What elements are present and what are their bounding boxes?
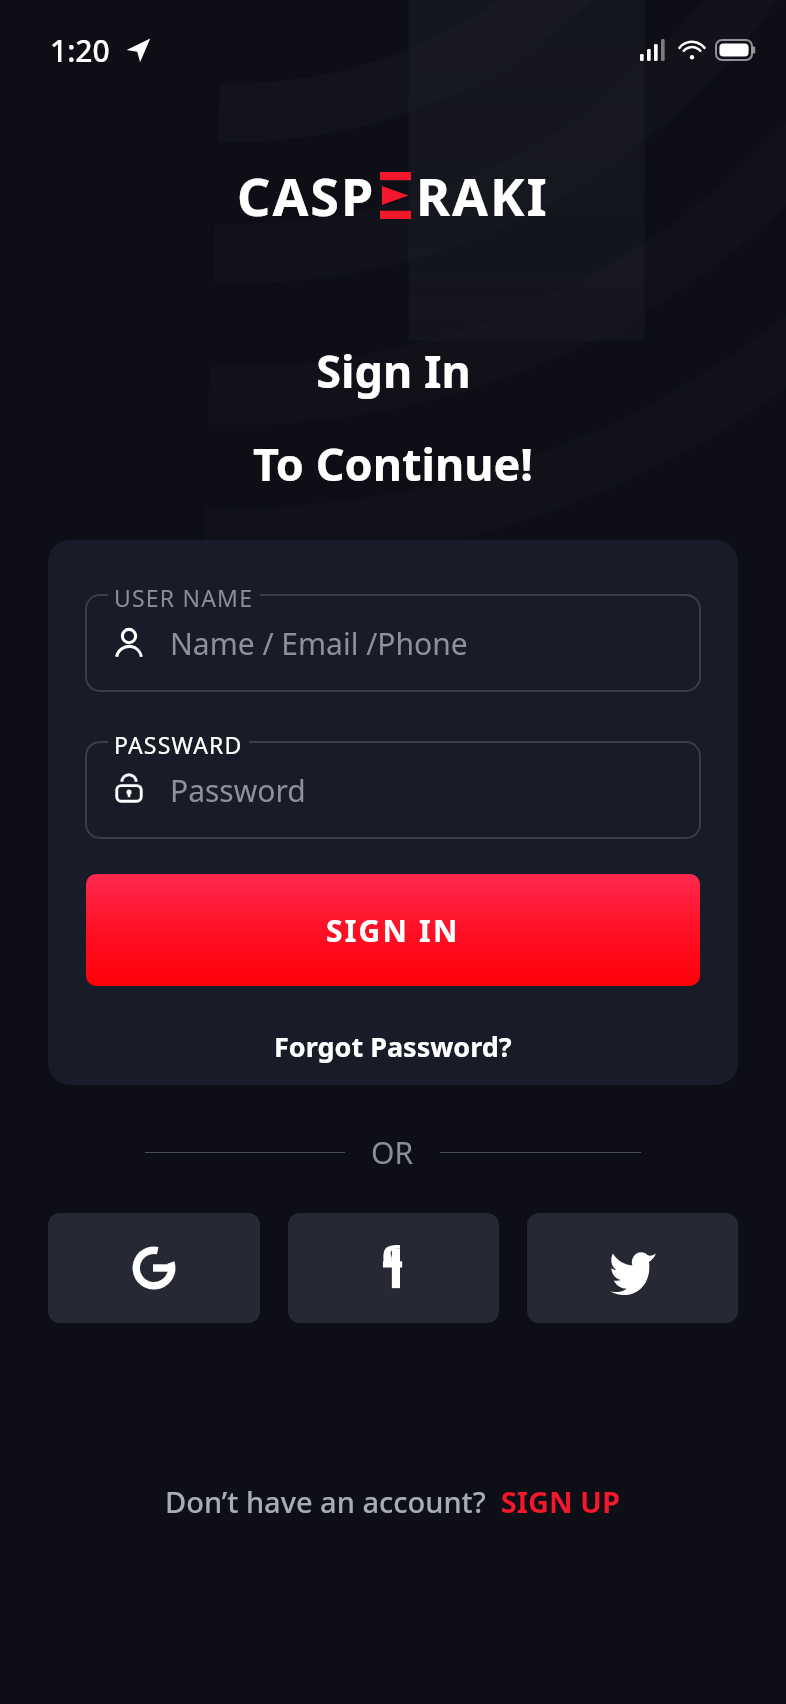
staticText: SIGN IN: [326, 910, 460, 951]
staticText: Name / Email /Phone: [170, 623, 468, 664]
staticText: Sign In: [316, 340, 471, 401]
button[interactable]: USER NAME: [86, 595, 700, 691]
staticText: OR: [371, 1132, 414, 1173]
staticText: Forgot Password?: [274, 1028, 512, 1065]
button[interactable]: Don’t have an account? SIGN UP: [149, 1474, 637, 1529]
button[interactable]: Sign in with Google: [48, 1213, 260, 1323]
button[interactable]: Forgot Password?: [86, 1028, 700, 1065]
button[interactable]: Sign in with Twitter: [527, 1213, 738, 1323]
staticText: To Continue!: [253, 433, 533, 494]
button[interactable]: SIGN IN: [86, 874, 700, 986]
staticText: PASSWARD: [114, 729, 243, 760]
staticText: RAKI: [416, 160, 549, 231]
staticText: USER NAME: [114, 582, 254, 613]
button[interactable]: Sign in with Facebook: [288, 1213, 499, 1323]
staticText: Password: [170, 770, 306, 811]
staticText: CASP: [237, 160, 376, 231]
staticText: Don’t have an account? SIGN UP: [165, 1482, 621, 1521]
staticText: 1:20: [50, 30, 110, 71]
button[interactable]: PASSWARD: [86, 742, 700, 838]
